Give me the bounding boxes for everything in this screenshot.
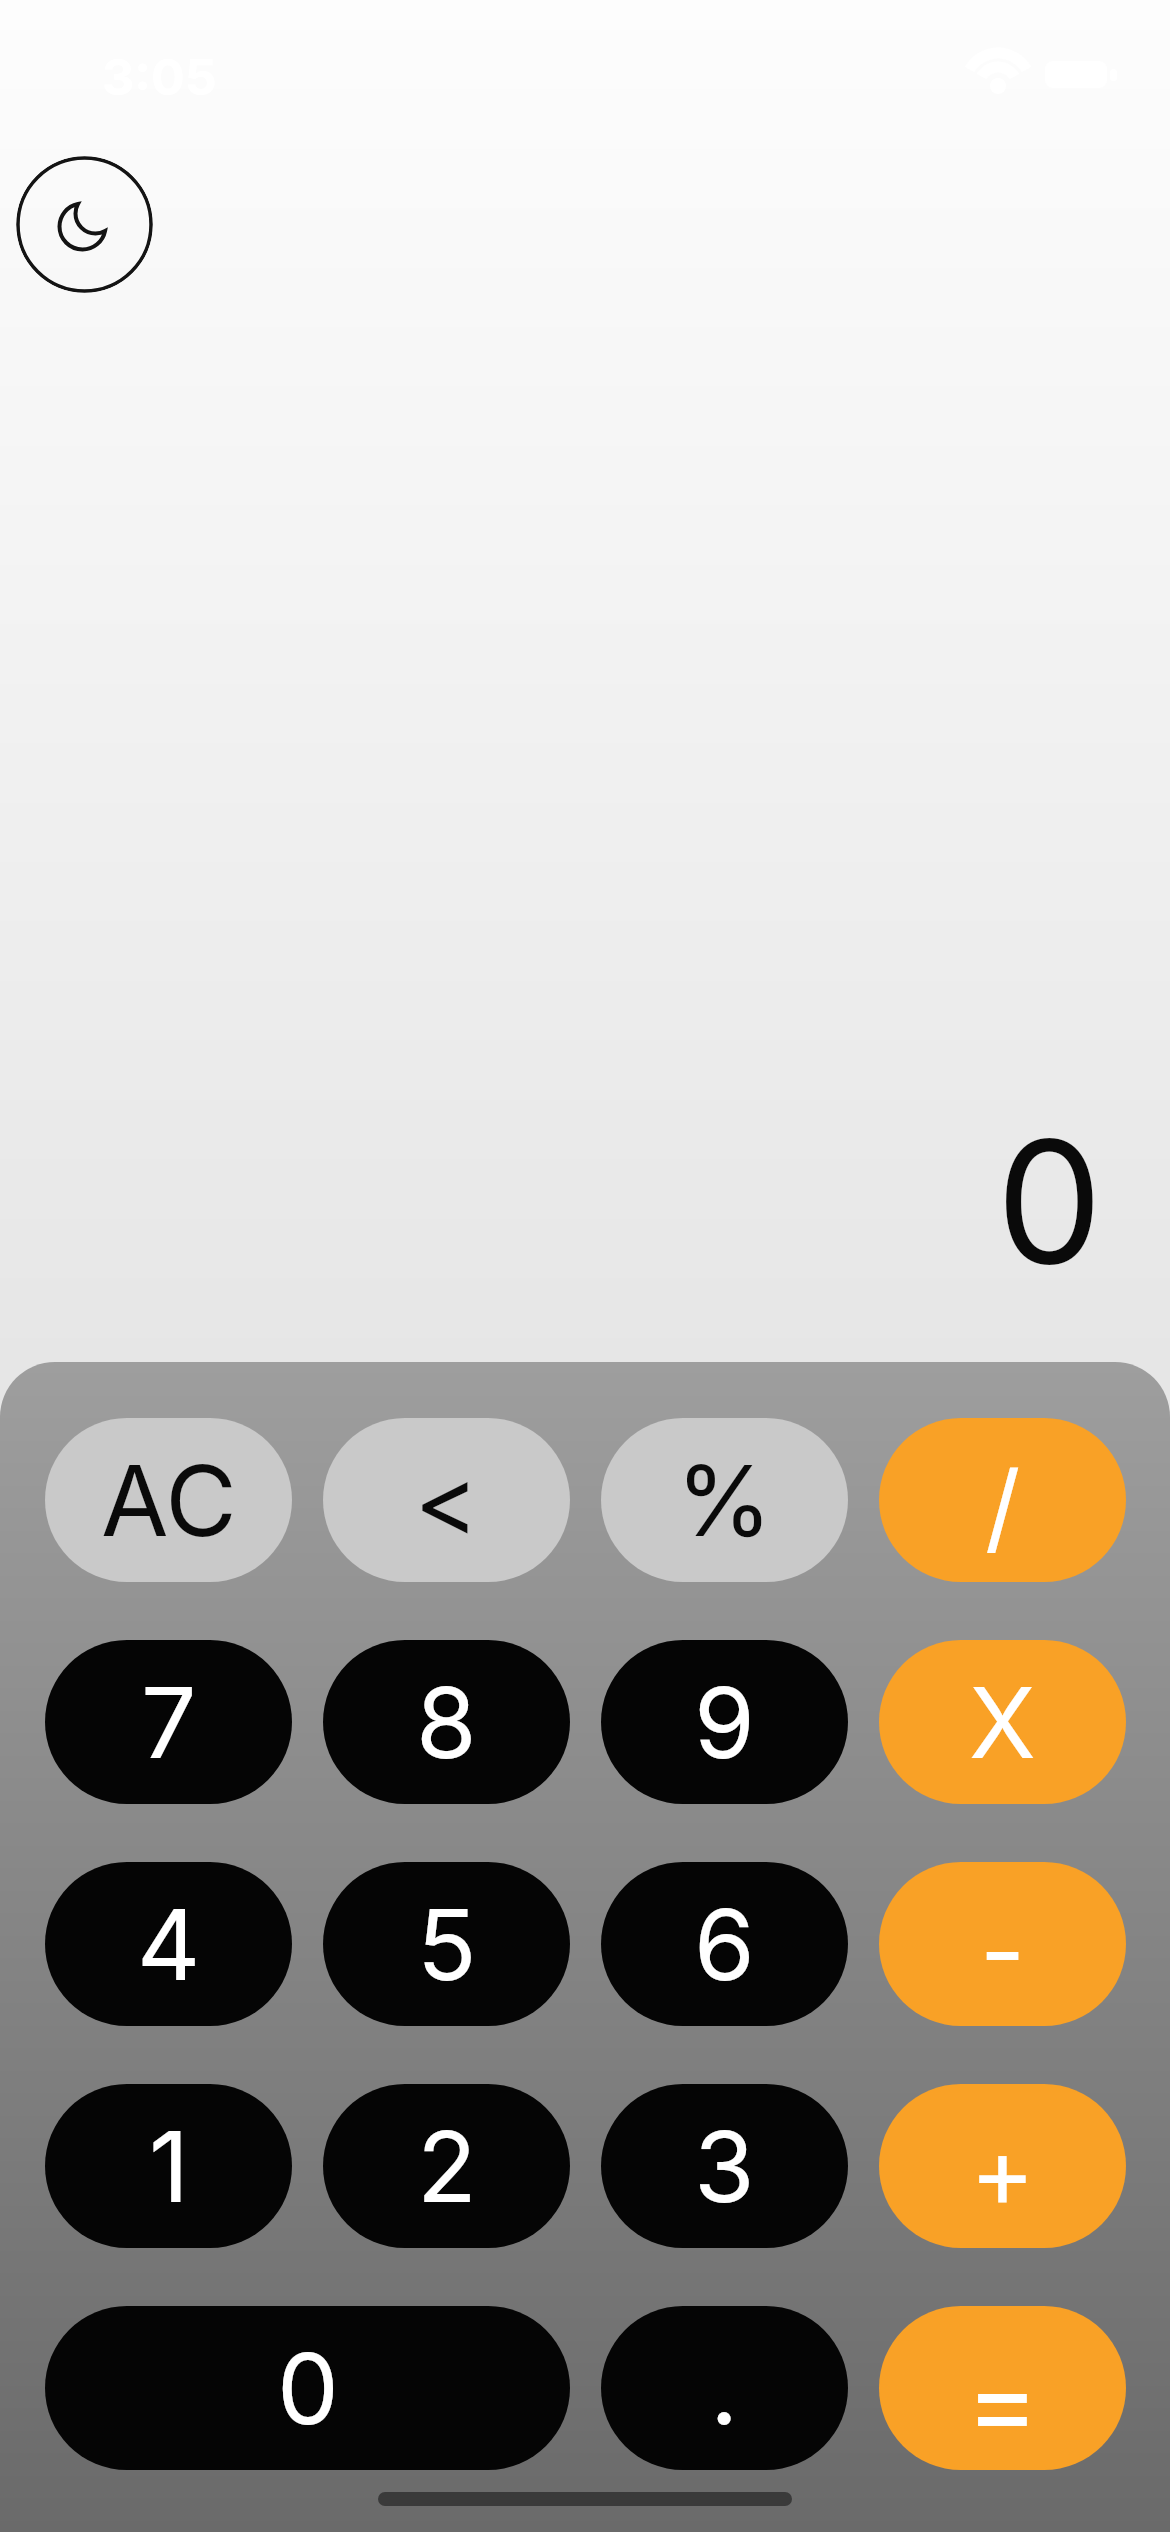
staticText: 6 <box>694 1885 755 2004</box>
button[interactable]: 6 <box>601 1862 848 2026</box>
staticText: 9 <box>694 1663 755 1782</box>
staticText: 0 <box>277 2329 339 2448</box>
button[interactable]: 9 <box>601 1640 848 1804</box>
button[interactable]: 2 <box>323 2084 570 2248</box>
staticText: . <box>710 2329 739 2448</box>
staticText: 3 <box>694 2107 755 2226</box>
staticText: 5 <box>417 1885 477 2004</box>
button[interactable]: / <box>879 1418 1126 1582</box>
button[interactable]: 3 <box>601 2084 848 2248</box>
button[interactable]: < <box>323 1418 570 1582</box>
staticText: 0 <box>996 1099 1103 1303</box>
button[interactable]: + <box>879 2084 1126 2248</box>
staticText: + <box>970 2112 1035 2231</box>
button[interactable]: % <box>601 1418 848 1582</box>
staticText: AC <box>101 1441 237 1560</box>
button[interactable]: 4 <box>45 1862 292 2026</box>
staticText: 1 <box>149 2107 189 2226</box>
button[interactable]: X <box>879 1640 1126 1804</box>
button[interactable]: . <box>601 2306 848 2470</box>
button[interactable]: 8 <box>323 1640 570 1804</box>
button[interactable]: 5 <box>323 1862 570 2026</box>
button[interactable]: - <box>879 1862 1126 2026</box>
staticText: X <box>969 1663 1036 1782</box>
button[interactable]: AC <box>45 1418 292 1582</box>
staticText: 4 <box>137 1885 201 2004</box>
button[interactable]: = <box>879 2306 1126 2470</box>
button[interactable]: 7 <box>45 1640 292 1804</box>
staticText: - <box>980 1891 1026 2010</box>
staticText: 2 <box>417 2107 477 2226</box>
staticText: 7 <box>141 1663 197 1782</box>
staticText: % <box>676 1441 773 1560</box>
staticText: / <box>985 1447 1021 1566</box>
button[interactable] <box>16 156 153 293</box>
button[interactable]: 0 <box>45 2306 570 2470</box>
button[interactable]: 1 <box>45 2084 292 2248</box>
staticText: = <box>966 2334 1039 2467</box>
staticText: < <box>414 1441 479 1560</box>
staticText: 8 <box>416 1663 477 1782</box>
